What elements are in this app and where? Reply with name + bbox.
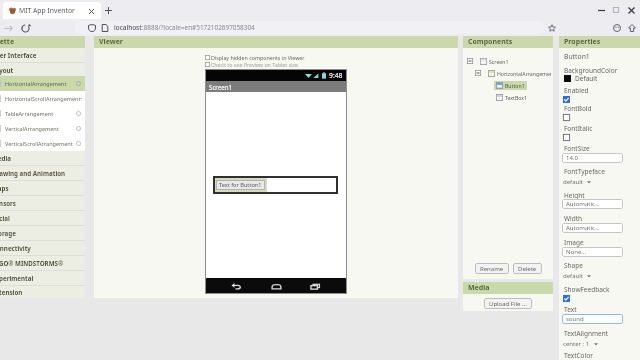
staticText: Height bbox=[564, 191, 585, 200]
staticText: Enabled bbox=[564, 86, 589, 95]
button[interactable]: Automatic... bbox=[562, 223, 623, 233]
staticText: sound bbox=[566, 315, 584, 323]
button[interactable]: Account bbox=[611, 22, 622, 33]
staticText: localhost bbox=[114, 23, 142, 32]
staticText: Components bbox=[468, 37, 513, 47]
staticText: :8888/?locale=en#5172102697058304 bbox=[142, 23, 255, 32]
button[interactable]: Check to see Preview on Tablet size bbox=[205, 61, 347, 68]
button[interactable]: Home bbox=[269, 279, 284, 294]
button[interactable]: Delete bbox=[513, 263, 542, 274]
staticText: Width bbox=[564, 214, 583, 223]
button[interactable]: Default bbox=[564, 74, 598, 83]
staticText: Automatic... bbox=[566, 224, 600, 232]
staticText: TextBox1 bbox=[505, 94, 528, 101]
button[interactable]: Experimental bbox=[0, 271, 85, 285]
button[interactable]: Checkbox bbox=[563, 132, 573, 142]
button[interactable]: Forward bbox=[2, 22, 14, 34]
button[interactable]: Connectivity bbox=[0, 241, 85, 255]
staticText: Sensors bbox=[0, 199, 16, 207]
staticText: Maps bbox=[0, 184, 9, 192]
button[interactable]: Checkbox bbox=[563, 94, 573, 104]
staticText: Display hidden components in Viewer bbox=[211, 54, 305, 61]
button[interactable]: localhost bbox=[75, 21, 545, 34]
button[interactable]: HorizontalScrollArrangement bbox=[0, 91, 85, 106]
staticText: LEGO® MINDSTORMS® bbox=[0, 259, 64, 267]
button[interactable]: default bbox=[563, 271, 591, 281]
staticText: Layout bbox=[0, 66, 14, 74]
button[interactable]: Button1 bbox=[463, 79, 553, 91]
button[interactable]: default bbox=[563, 177, 591, 187]
button[interactable]: Layout bbox=[0, 63, 85, 76]
button[interactable]: Bookmark this page bbox=[546, 22, 557, 33]
staticText: Drawing and Animation bbox=[0, 169, 66, 177]
staticText: MIT App Inventor bbox=[19, 6, 75, 15]
button[interactable]: Storage bbox=[0, 226, 85, 240]
button[interactable]: Media bbox=[0, 151, 85, 165]
staticText: 14.0 bbox=[566, 154, 578, 162]
button[interactable]: Reload bbox=[19, 22, 31, 34]
button[interactable]: Screen1 bbox=[463, 55, 553, 67]
button[interactable]: New tab bbox=[102, 4, 114, 16]
staticText: Extension bbox=[0, 288, 23, 296]
button[interactable]: Maximize bbox=[610, 4, 622, 16]
button[interactable]: MIT App Inventor bbox=[3, 2, 101, 19]
button[interactable]: sound bbox=[562, 314, 623, 324]
staticText: TextAlignment bbox=[564, 329, 609, 338]
staticText: default bbox=[563, 178, 583, 186]
staticText: default bbox=[563, 272, 583, 280]
button[interactable]: Checkbox bbox=[563, 293, 573, 303]
staticText: Automatic... bbox=[566, 200, 600, 208]
staticText: Button1 bbox=[564, 52, 590, 61]
button[interactable]: VerticalArrangement bbox=[0, 121, 85, 136]
button[interactable]: TableArrangement bbox=[0, 106, 85, 121]
button[interactable]: Back bbox=[229, 279, 244, 294]
button[interactable]: HorizontalArrangement bbox=[0, 76, 85, 91]
staticText: Viewer bbox=[99, 37, 123, 47]
staticText: User Interface bbox=[0, 51, 37, 59]
staticText: Default bbox=[575, 74, 598, 83]
button[interactable]: Checkbox bbox=[563, 112, 573, 122]
staticText: Media bbox=[0, 154, 11, 162]
staticText: Media bbox=[468, 283, 490, 293]
button[interactable]: Minimize bbox=[595, 4, 607, 16]
staticText: ShowFeedback bbox=[564, 285, 610, 294]
button[interactable]: User Interface bbox=[0, 48, 85, 62]
staticText: VerticalArrangement bbox=[5, 125, 59, 132]
button[interactable]: Sensors bbox=[0, 196, 85, 210]
button[interactable]: None... bbox=[562, 247, 623, 257]
button[interactable]: Automatic... bbox=[562, 199, 623, 209]
button[interactable]: Drawing and Animation bbox=[0, 166, 85, 180]
button[interactable]: Save to Pocket bbox=[626, 22, 637, 33]
staticText: Properties bbox=[564, 37, 601, 47]
button[interactable]: TextBox1 bbox=[463, 91, 553, 103]
staticText: Check to see Preview on Tablet size bbox=[211, 61, 299, 68]
button[interactable]: Text for Button1 bbox=[214, 177, 267, 193]
staticText: Delete bbox=[518, 265, 537, 273]
button[interactable]: HorizontalArrangement1 bbox=[463, 67, 553, 79]
staticText: Shape bbox=[564, 261, 583, 270]
button[interactable]: 14.0 bbox=[562, 153, 623, 163]
button[interactable]: center : 1 bbox=[563, 339, 598, 349]
button[interactable]: Upload File ... bbox=[484, 298, 532, 309]
button[interactable]: Maps bbox=[0, 181, 85, 195]
staticText: Upload File ... bbox=[489, 300, 527, 308]
button[interactable]: Display hidden components in Viewer bbox=[205, 54, 347, 61]
staticText: 9:48 bbox=[329, 71, 343, 80]
button[interactable]: Rename bbox=[475, 263, 509, 274]
staticText: Text for Button1 bbox=[219, 181, 262, 189]
button[interactable]: Social bbox=[0, 211, 85, 225]
button[interactable]: Close window bbox=[625, 4, 637, 16]
staticText: TextColor bbox=[564, 351, 593, 360]
button[interactable]: Extension bbox=[0, 286, 85, 298]
button[interactable]: VerticalScrollArrangement bbox=[0, 136, 85, 151]
button[interactable]: Close tab bbox=[86, 6, 96, 16]
staticText: TableArrangement bbox=[5, 110, 54, 117]
staticText: FontSize bbox=[564, 144, 590, 153]
staticText: VerticalScrollArrangement bbox=[5, 140, 73, 147]
staticText: Social bbox=[0, 214, 10, 222]
button[interactable]: Recent apps bbox=[308, 279, 323, 294]
staticText: Experimental bbox=[0, 274, 34, 282]
staticText: Button1 bbox=[505, 82, 525, 89]
staticText: FontBold bbox=[564, 104, 592, 113]
button[interactable]: LEGO® MINDSTORMS® bbox=[0, 256, 85, 270]
